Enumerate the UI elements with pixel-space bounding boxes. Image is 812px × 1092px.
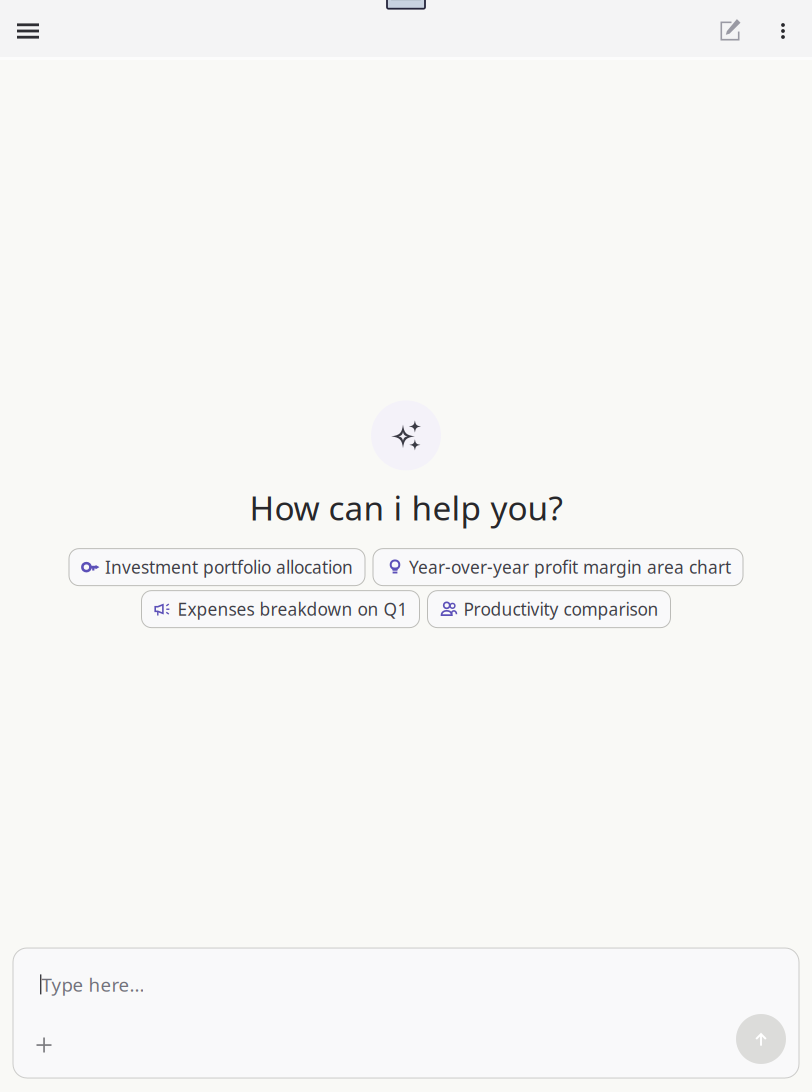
button[interactable]: Investment portfolio allocation	[69, 549, 365, 586]
button[interactable]: Productivity comparison	[427, 591, 670, 628]
staticText: Investment portfolio allocation	[105, 556, 353, 579]
button[interactable]: More options	[756, 0, 812, 60]
button[interactable]: Send message	[736, 1020, 786, 1070]
staticText: Productivity comparison	[463, 598, 658, 621]
staticText: Year-over-year profit margin area chart	[409, 556, 731, 579]
button[interactable]: Add attachment	[26, 1027, 62, 1063]
button[interactable]: Expenses breakdown on Q1	[141, 591, 419, 628]
button[interactable]: Year-over-year profit margin area chart	[373, 549, 743, 586]
staticText: Type here...	[41, 972, 144, 997]
button[interactable]: Menu	[0, 0, 56, 60]
button[interactable]: New chat	[700, 0, 756, 60]
staticText: How can i help you?	[249, 485, 562, 530]
staticText: Expenses breakdown on Q1	[177, 598, 407, 621]
